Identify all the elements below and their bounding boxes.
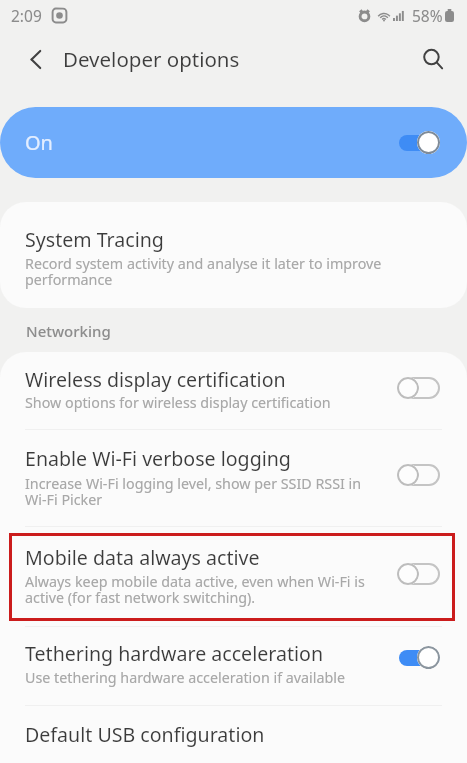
button[interactable]: Default USB configuration bbox=[0, 705, 467, 763]
staticText: Increase Wi-Fi logging level, show per S… bbox=[25, 476, 362, 508]
staticText: Enable Wi-Fi verbose logging bbox=[25, 445, 291, 472]
staticText: 2:09 bbox=[11, 5, 42, 26]
staticText: On bbox=[25, 129, 53, 156]
button[interactable]: Mobile data always active bbox=[0, 526, 467, 626]
staticText: Record system activity and analyse it la… bbox=[25, 256, 382, 288]
staticText: 58% bbox=[412, 5, 443, 26]
staticText: Always keep mobile data active, even whe… bbox=[25, 574, 365, 606]
staticText: Mobile data always active bbox=[25, 544, 260, 571]
staticText: Wireless display certification bbox=[25, 366, 286, 393]
staticText: Default USB configuration bbox=[25, 721, 265, 748]
staticText: Developer options bbox=[63, 45, 240, 73]
button[interactable]: Tethering hardware acceleration bbox=[0, 626, 467, 705]
button[interactable]: Search bbox=[412, 39, 452, 79]
staticText: Tethering hardware acceleration bbox=[25, 640, 324, 667]
staticText: Use tethering hardware acceleration if a… bbox=[25, 670, 346, 686]
button[interactable]: On bbox=[0, 107, 467, 178]
button[interactable]: System Tracing bbox=[0, 202, 467, 308]
staticText: Show options for wireless display certif… bbox=[25, 395, 331, 411]
staticText: System Tracing bbox=[25, 226, 164, 253]
button[interactable]: Wireless display certification bbox=[0, 352, 467, 429]
staticText: Networking bbox=[26, 321, 111, 341]
button[interactable]: Enable Wi-Fi verbose logging bbox=[0, 429, 467, 526]
button[interactable]: Back bbox=[15, 39, 55, 79]
